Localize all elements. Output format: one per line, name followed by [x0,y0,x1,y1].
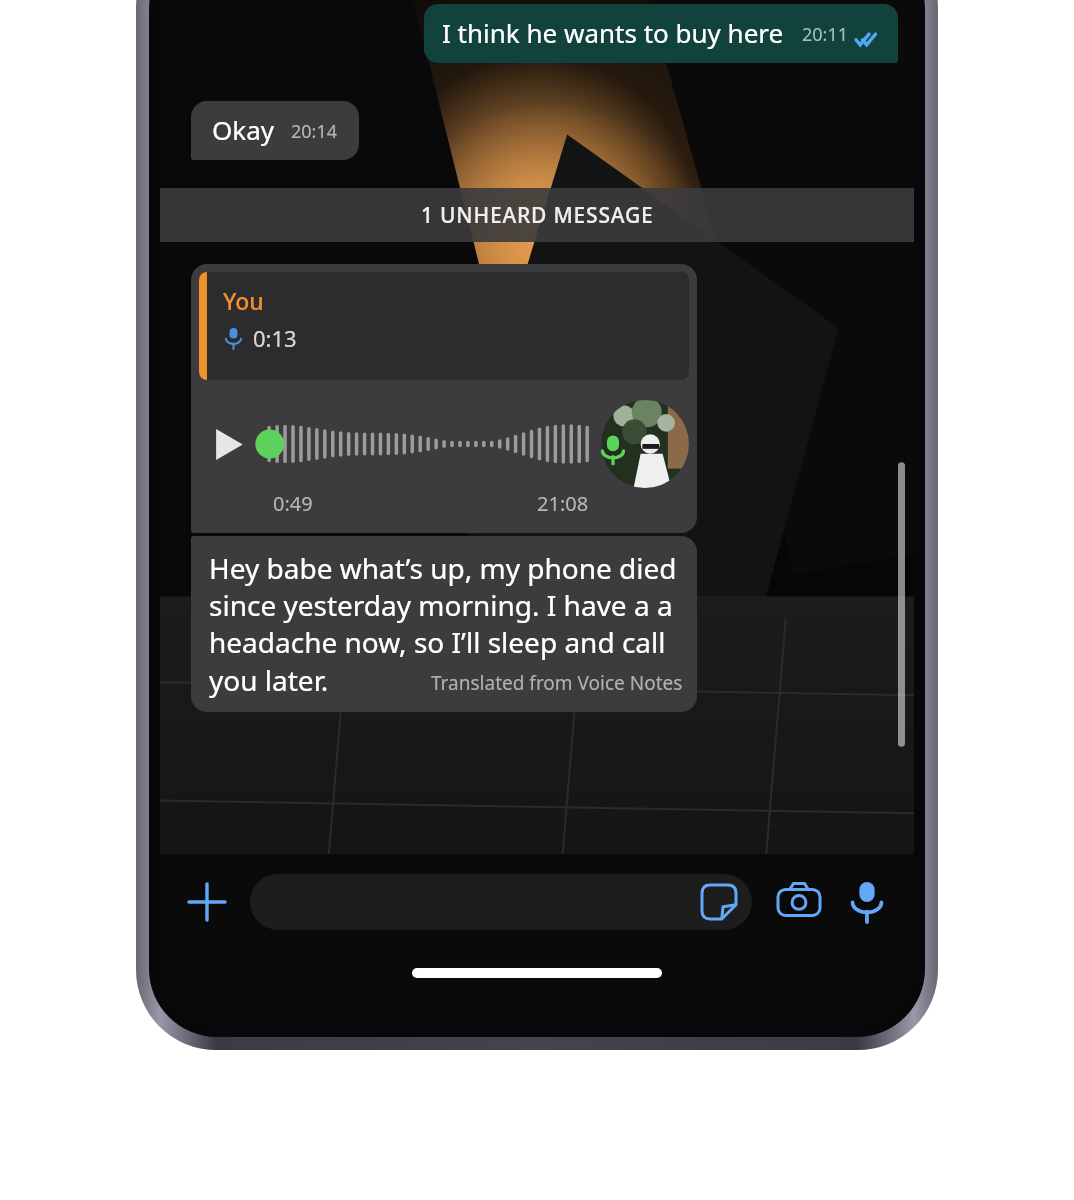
button[interactable]: You [191,264,697,533]
staticText: 20:11 [802,22,849,47]
staticText: 21:08 [537,490,589,517]
staticText: 20:14 [291,119,338,144]
staticText: Okay [212,112,275,147]
button[interactable]: Attach [178,873,236,931]
button[interactable]: Play voice message [205,421,251,467]
button[interactable]: Okay [191,101,359,160]
button[interactable]: I think he wants to buy here [424,4,898,63]
button[interactable]: Stickers [250,874,752,930]
other: Stickers [702,885,736,919]
staticText: you later. [209,661,329,699]
staticText: You [223,285,264,316]
button[interactable]: Hey babe what’s up, my phone died since … [191,536,697,712]
button[interactable]: Camera [770,873,828,931]
staticText: 0:49 [273,490,313,517]
staticText: I think he wants to buy here [442,15,784,50]
staticText: 0:13 [253,323,297,353]
staticText: Hey babe what’s up, my phone died since … [209,549,683,661]
staticText: Translated from Voice Notes [431,670,683,696]
button[interactable]: Record voice message [838,873,896,931]
staticText: 1 UNHEARD MESSAGE [421,201,654,230]
